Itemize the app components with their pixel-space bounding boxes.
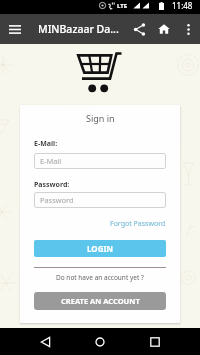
- staticText: E-Mail:: [34, 139, 58, 149]
- staticText: MINBazaar Da...: [38, 22, 127, 36]
- staticText: Password:: [34, 180, 70, 190]
- staticText: LOGIN: [87, 243, 114, 254]
- button[interactable]: More options: [176, 14, 200, 44]
- staticText: E-Mail: [40, 156, 62, 166]
- button[interactable]: Password: [34, 192, 166, 208]
- staticText: Do not have an account yet ?: [56, 273, 144, 282]
- button[interactable]: Home: [86, 328, 114, 355]
- button[interactable]: LOGIN: [34, 240, 166, 257]
- staticText: Forgot Password: [110, 219, 166, 229]
- button[interactable]: Share: [127, 14, 151, 44]
- button[interactable]: Recent apps: [141, 328, 169, 355]
- button[interactable]: Forgot Password: [110, 219, 166, 229]
- staticText: Sign in: [86, 112, 115, 124]
- button[interactable]: E-Mail: [34, 153, 166, 169]
- button[interactable]: Home: [151, 14, 176, 44]
- button[interactable]: Open navigation drawer: [0, 14, 30, 44]
- button[interactable]: CREATE AN ACCOUNT: [34, 292, 166, 310]
- staticText: 11:48: [172, 0, 193, 11]
- button[interactable]: Back: [31, 328, 59, 355]
- staticText: LTE: [117, 2, 128, 10]
- staticText: Password: [40, 195, 74, 205]
- staticText: CREATE AN ACCOUNT: [61, 296, 140, 306]
